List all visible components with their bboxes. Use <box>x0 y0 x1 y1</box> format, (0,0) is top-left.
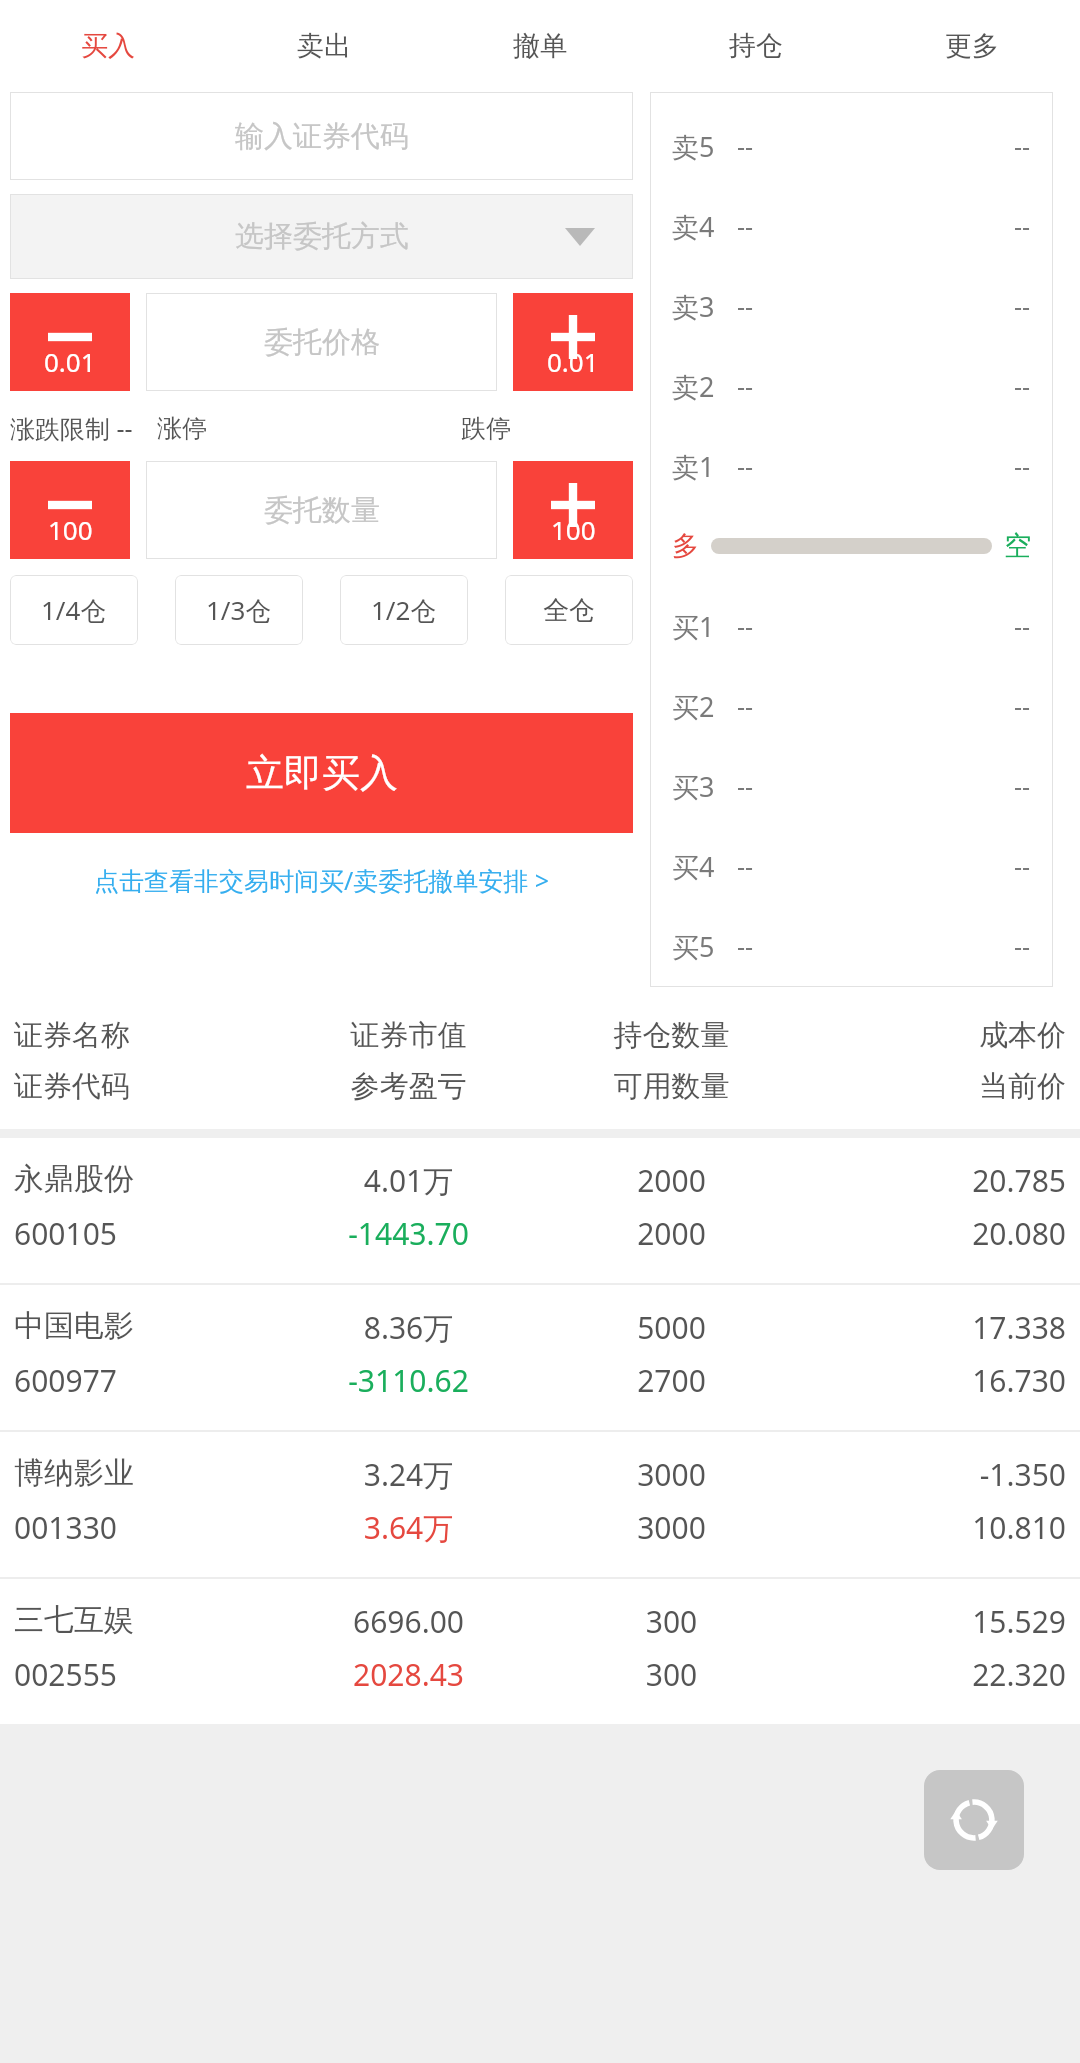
button[interactable]: 卖出 <box>216 0 432 92</box>
staticText: -1.350 <box>803 1454 1066 1495</box>
staticText: -- <box>737 849 754 883</box>
button[interactable]: 1/4仓 <box>10 575 138 645</box>
button[interactable]: 卖4 <box>672 186 1031 266</box>
staticText: 3.24万 <box>277 1454 540 1495</box>
button[interactable]: 输入证券代码 <box>10 92 633 180</box>
button[interactable]: 买入 <box>0 0 216 92</box>
staticText: 永鼎股份 <box>14 1160 277 1198</box>
staticText: 6696.00 <box>277 1601 540 1642</box>
button[interactable]: 买2 <box>672 666 1031 746</box>
button[interactable]: Refresh <box>924 1770 1024 1870</box>
staticText: 2700 <box>540 1360 803 1401</box>
staticText: 买1 <box>672 608 715 645</box>
button[interactable]: 全仓 <box>505 575 633 645</box>
staticText: 2000 <box>540 1213 803 1254</box>
button[interactable]: 卖2 <box>672 346 1031 426</box>
staticText: 多 <box>672 529 699 563</box>
button[interactable]: Increase <box>513 461 633 559</box>
staticText: -- <box>737 769 754 803</box>
staticText: 成本价 <box>803 1017 1066 1054</box>
button[interactable]: 买4 <box>672 826 1031 906</box>
staticText: 20.785 <box>803 1160 1066 1201</box>
button[interactable]: 1/2仓 <box>340 575 468 645</box>
staticText: 买2 <box>672 688 715 725</box>
button[interactable]: 点击查看非交易时间买/卖委托撤单安排 > <box>10 863 633 897</box>
staticText: 卖2 <box>672 368 715 405</box>
button[interactable]: 买5 <box>672 906 1031 986</box>
staticText: 3000 <box>540 1507 803 1548</box>
staticText: 博纳影业 <box>14 1454 277 1492</box>
staticText: 中国电影 <box>14 1307 277 1345</box>
staticText: -- <box>737 369 754 403</box>
staticText: -- <box>1014 609 1031 643</box>
button[interactable]: 跌停 <box>461 413 511 444</box>
staticText: 001330 <box>14 1507 277 1548</box>
button[interactable]: 中国电影 <box>0 1285 1080 1430</box>
button[interactable]: 三七互娱 <box>0 1579 1080 1724</box>
staticText: -- <box>737 129 754 163</box>
button[interactable]: 委托价格 <box>146 293 497 391</box>
staticText: -1443.70 <box>277 1213 540 1254</box>
staticText: -- <box>737 449 754 483</box>
button[interactable]: 委托数量 <box>146 461 497 559</box>
staticText: -- <box>737 689 754 723</box>
staticText: 当前价 <box>803 1068 1066 1105</box>
staticText: 1/4仓 <box>41 592 107 628</box>
staticText: 600977 <box>14 1360 277 1401</box>
staticText: 1/2仓 <box>371 592 437 628</box>
staticText: -- <box>1014 209 1031 243</box>
staticText: -- <box>1014 689 1031 723</box>
button[interactable]: Decrease <box>10 293 130 391</box>
staticText: 300 <box>540 1601 803 1642</box>
staticText: 16.730 <box>803 1360 1066 1401</box>
staticText: 证券代码 <box>14 1068 277 1105</box>
button[interactable]: 买1 <box>672 586 1031 666</box>
staticText: -- <box>1014 289 1031 323</box>
staticText: 2028.43 <box>277 1654 540 1695</box>
staticText: 立即买入 <box>246 749 398 797</box>
staticText: -- <box>737 209 754 243</box>
button[interactable]: 卖1 <box>672 426 1031 506</box>
staticText: 买入 <box>81 29 135 63</box>
button[interactable]: 1/3仓 <box>175 575 303 645</box>
button[interactable]: Increase <box>513 293 633 391</box>
staticText: 参考盈亏 <box>277 1068 540 1105</box>
button[interactable]: 卖5 <box>672 106 1031 186</box>
staticText: 撤单 <box>513 29 567 63</box>
button[interactable]: 选择委托方式 <box>10 194 633 279</box>
staticText: -- <box>737 929 754 963</box>
staticText: 证券市值 <box>277 1017 540 1054</box>
staticText: 证券名称 <box>14 1017 277 1054</box>
staticText: 委托价格 <box>264 324 380 361</box>
staticText: 委托数量 <box>264 492 380 529</box>
button[interactable]: Decrease <box>10 461 130 559</box>
button[interactable]: 卖3 <box>672 266 1031 346</box>
button[interactable]: 持仓 <box>648 0 864 92</box>
button[interactable]: 涨停 <box>157 413 207 444</box>
staticText: -- <box>737 289 754 323</box>
staticText: 三七互娱 <box>14 1601 277 1639</box>
staticText: 22.320 <box>803 1654 1066 1695</box>
staticText: -- <box>1014 129 1031 163</box>
staticText: 卖5 <box>672 128 715 165</box>
staticText: 100 <box>551 512 596 547</box>
button[interactable]: 永鼎股份 <box>0 1138 1080 1283</box>
staticText: -- <box>737 609 754 643</box>
button[interactable]: 立即买入 <box>10 713 633 833</box>
staticText: 5000 <box>540 1307 803 1348</box>
staticText: -- <box>1014 449 1031 483</box>
staticText: 空 <box>1004 529 1031 563</box>
button[interactable]: 更多 <box>864 0 1080 92</box>
button[interactable]: 买3 <box>672 746 1031 826</box>
staticText: 0.01 <box>44 344 96 379</box>
staticText: 买4 <box>672 848 715 885</box>
staticText: 涨跌限制 -- <box>10 411 133 445</box>
button[interactable]: 撤单 <box>432 0 648 92</box>
staticText: 002555 <box>14 1654 277 1695</box>
staticText: 10.810 <box>803 1507 1066 1548</box>
staticText: 买3 <box>672 768 715 805</box>
staticText: 卖出 <box>297 29 351 63</box>
staticText: 持仓 <box>729 29 783 63</box>
staticText: 100 <box>48 512 93 547</box>
button[interactable]: 博纳影业 <box>0 1432 1080 1577</box>
